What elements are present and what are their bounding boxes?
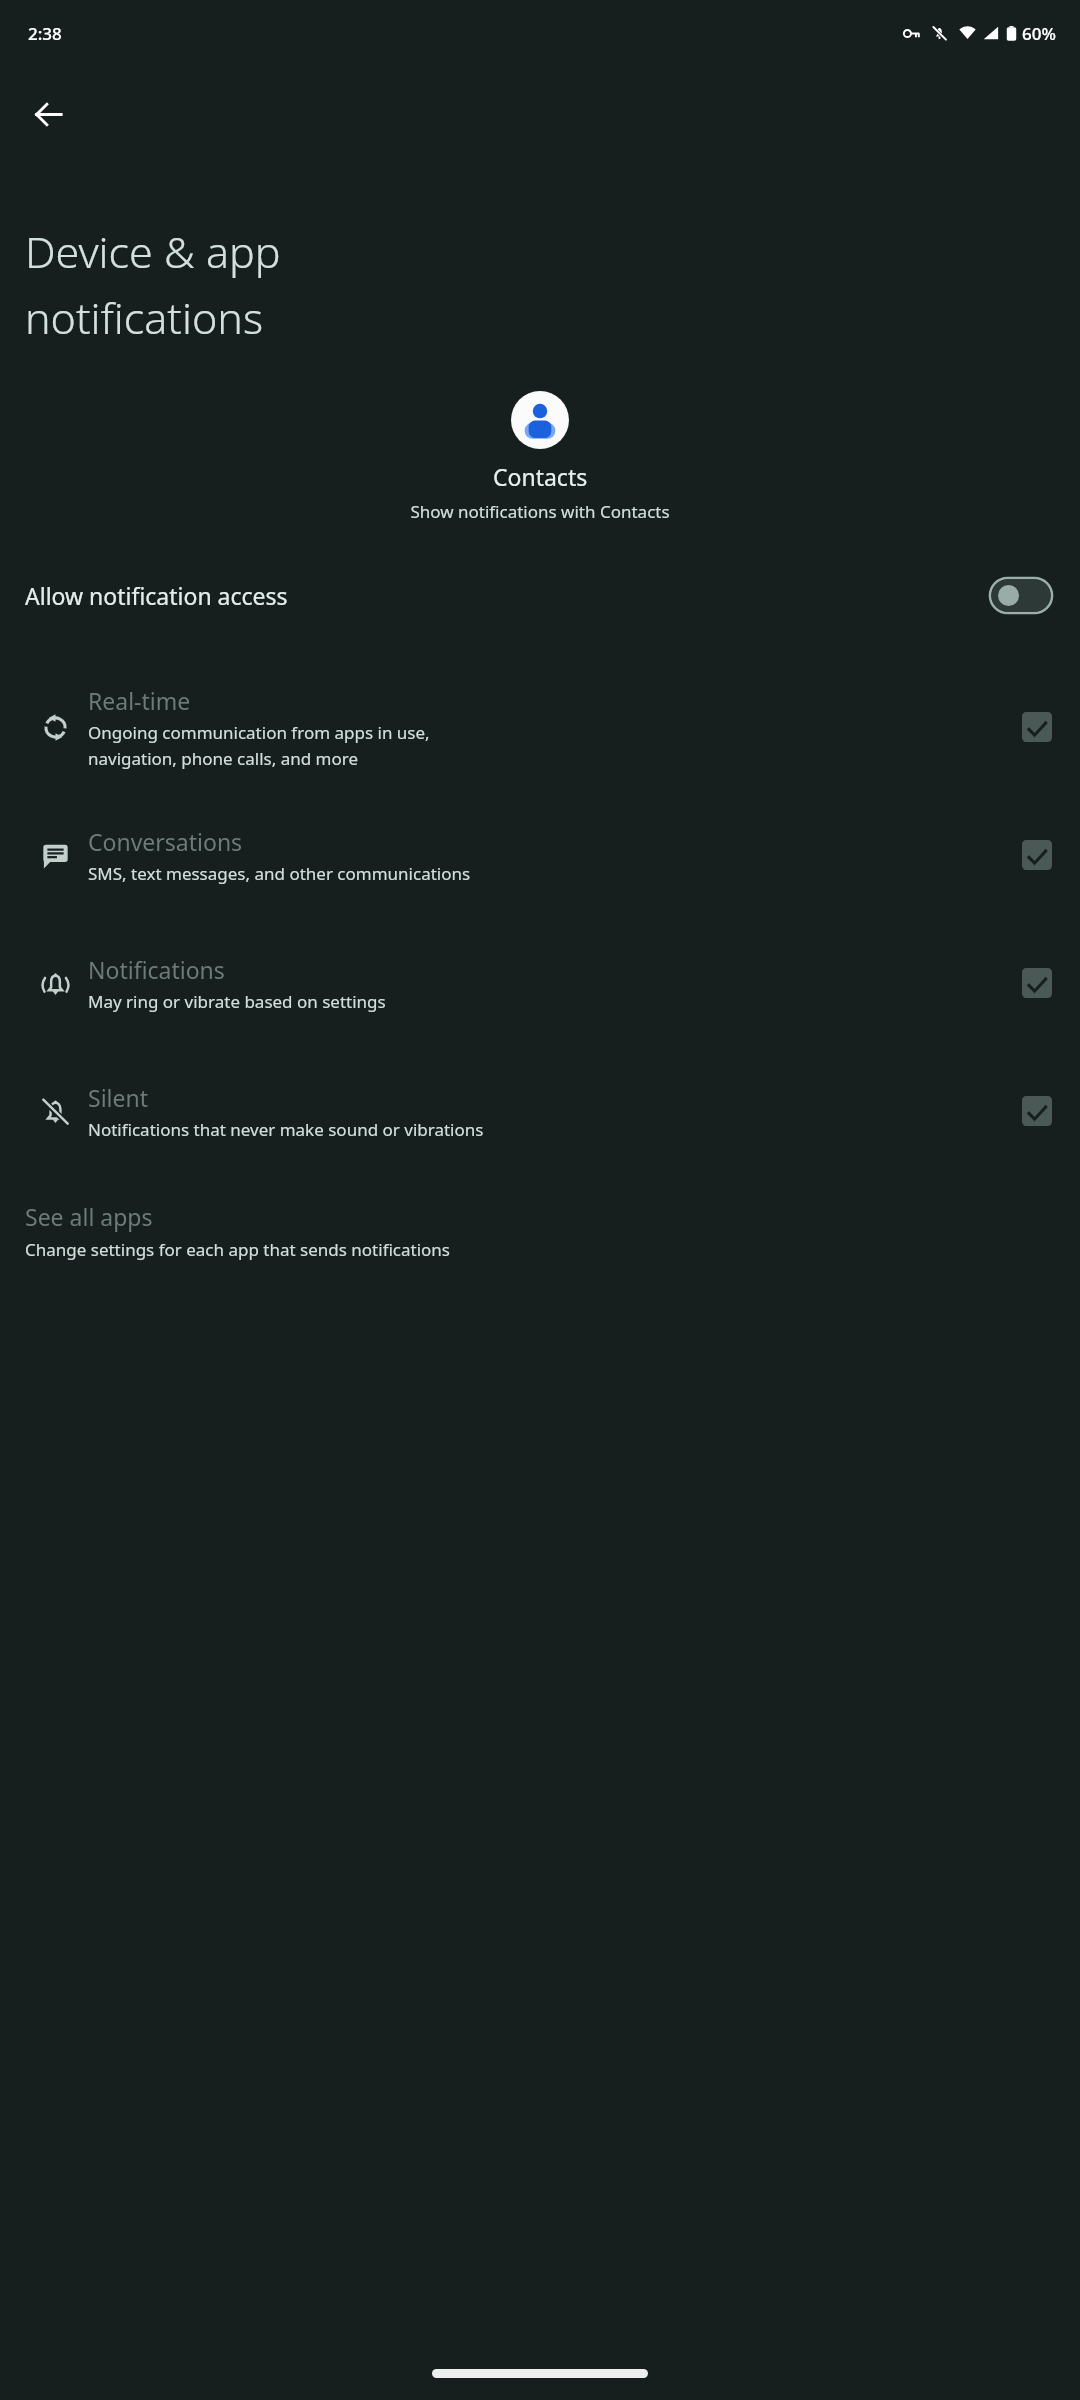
button[interactable]: Notifications (0, 919, 1080, 1047)
staticText: 2:38 (28, 22, 62, 45)
staticText: Device & app (25, 222, 281, 281)
button[interactable]: Back (18, 84, 78, 144)
staticText: Real-time (88, 685, 191, 716)
button[interactable]: Silent (0, 1047, 1080, 1175)
staticText: notifications (25, 288, 264, 347)
staticText: Notifications (88, 954, 225, 985)
staticText: Conversations (88, 826, 243, 857)
staticText: Ongoing communication from apps in use, … (88, 721, 430, 770)
staticText: SMS, text messages, and other communicat… (88, 862, 471, 885)
other: Conversations checkbox (1022, 840, 1052, 870)
staticText: 60% (1022, 22, 1056, 45)
other: Notifications checkbox (1022, 968, 1052, 998)
staticText: Contacts (493, 461, 588, 492)
staticText: Change settings for each app that sends … (25, 1238, 451, 1261)
staticText: Silent (88, 1082, 148, 1113)
other: Silent checkbox (1022, 1096, 1052, 1126)
button[interactable]: See all apps (0, 1191, 1080, 1275)
button[interactable]: Real-time (0, 663, 1080, 791)
staticText: Notifications that never make sound or v… (88, 1118, 484, 1141)
staticText: Allow notification access (25, 580, 990, 611)
other: Real-time checkbox (1022, 712, 1052, 742)
button[interactable]: Conversations (0, 791, 1080, 919)
staticText: Show notifications with Contacts (410, 500, 670, 523)
button[interactable]: Allow notification access (0, 553, 1080, 637)
staticText: May ring or vibrate based on settings (88, 990, 386, 1013)
staticText: See all apps (25, 1201, 153, 1232)
